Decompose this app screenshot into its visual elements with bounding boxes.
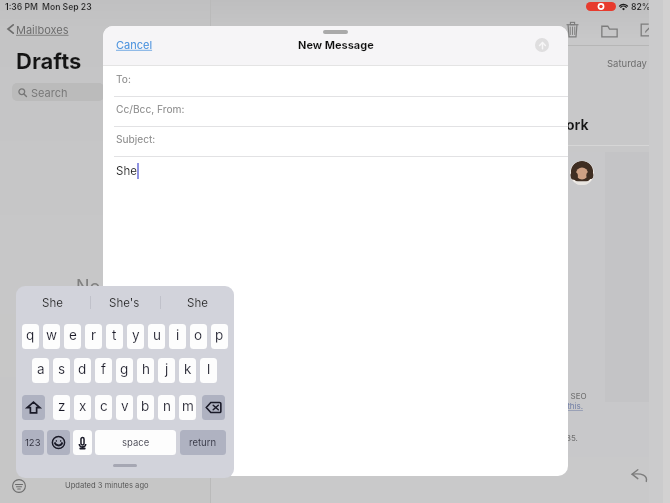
staticText: m (182, 398, 194, 414)
button[interactable]: s (53, 358, 70, 383)
button[interactable]: Subject: (103, 127, 568, 157)
button[interactable]: space (95, 430, 176, 455)
staticText: w (46, 327, 58, 343)
button[interactable]: Cancel (116, 38, 153, 51)
staticText: z (58, 398, 66, 414)
button[interactable]: p (211, 324, 228, 349)
staticText: Cc/Bcc, From: (116, 103, 185, 115)
button[interactable]: Sender avatar (570, 161, 594, 185)
staticText: 82% (631, 2, 651, 12)
staticText: 123 (25, 437, 41, 448)
staticText: t (112, 327, 117, 343)
staticText: x (79, 398, 87, 414)
staticText: Drafts (16, 48, 82, 75)
button[interactable]: Compose (640, 22, 655, 37)
button[interactable]: Filter (12, 479, 26, 493)
button[interactable]: k (179, 358, 196, 383)
staticText: p (215, 327, 224, 343)
button[interactable]: f (95, 358, 112, 383)
staticText: To: (116, 73, 131, 85)
staticText: space (122, 437, 150, 448)
button[interactable]: h (137, 358, 154, 383)
staticText: return (189, 437, 217, 448)
button[interactable]: She (16, 286, 88, 319)
button[interactable]: n (158, 395, 175, 420)
button[interactable]: j (158, 358, 175, 383)
staticText: q (26, 327, 35, 343)
staticText: c (100, 398, 108, 414)
staticText: a (37, 361, 45, 377)
button[interactable]: o (190, 324, 207, 349)
button[interactable]: v (116, 395, 133, 420)
button[interactable]: Emoji (47, 430, 70, 455)
staticText: Search (31, 86, 68, 99)
button[interactable]: u (148, 324, 165, 349)
button[interactable]: To: (103, 66, 568, 97)
button[interactable]: Shift (22, 395, 45, 420)
staticText: She (42, 296, 63, 310)
button[interactable]: Cc/Bcc, From: (103, 97, 568, 127)
staticText: She (116, 164, 137, 178)
button[interactable]: She (161, 286, 234, 319)
staticText: New Message (298, 38, 374, 51)
staticText: Cancel (116, 38, 153, 51)
staticText: Saturday (607, 58, 647, 69)
button[interactable]: Mailboxes (6, 22, 69, 36)
button[interactable]: t (106, 324, 123, 349)
button[interactable]: l (200, 358, 217, 383)
staticText: k (184, 361, 192, 377)
button[interactable]: m (179, 395, 196, 420)
staticText: She (187, 296, 208, 310)
button[interactable]: d (74, 358, 91, 383)
staticText: l (207, 361, 211, 377)
staticText: j (165, 361, 169, 377)
staticText: Mailboxes (16, 23, 69, 36)
staticText: e (69, 327, 77, 343)
button[interactable]: c (95, 395, 112, 420)
staticText: No (76, 276, 101, 298)
button[interactable]: r (85, 324, 102, 349)
staticText: y (132, 327, 140, 343)
staticText: d (78, 361, 87, 377)
staticText: , SEO (566, 391, 587, 401)
button[interactable]: e (64, 324, 81, 349)
staticText: n (163, 398, 171, 414)
button[interactable]: a (32, 358, 49, 383)
staticText: She's (109, 296, 140, 310)
staticText: f (101, 361, 106, 377)
button[interactable]: return (180, 430, 226, 455)
staticText: v (121, 398, 129, 414)
button[interactable]: Move to folder (601, 24, 618, 38)
button[interactable]: w (43, 324, 60, 349)
staticText: 85. (566, 433, 578, 443)
button[interactable]: Search (12, 83, 104, 101)
staticText: o (194, 327, 203, 343)
staticText: h (142, 361, 150, 377)
button[interactable]: b (137, 395, 154, 420)
button[interactable]: y (127, 324, 144, 349)
button[interactable]: She (103, 157, 568, 187)
button[interactable]: Backspace (202, 395, 225, 420)
button[interactable]: g (116, 358, 133, 383)
button[interactable]: Dictate (73, 430, 92, 455)
staticText: 1:36 PM (5, 2, 38, 12)
staticText: ork (566, 116, 589, 133)
button[interactable]: Reply (631, 468, 648, 482)
button[interactable]: x (74, 395, 91, 420)
staticText: b (141, 398, 150, 414)
staticText: g (120, 361, 129, 377)
staticText: i (176, 327, 180, 343)
staticText: d this. (560, 401, 583, 411)
staticText: s (58, 361, 66, 377)
button[interactable]: i (169, 324, 186, 349)
staticText: Updated 3 minutes ago (65, 481, 149, 490)
staticText: Subject: (116, 133, 156, 145)
staticText: Mon Sep 23 (42, 2, 92, 12)
button[interactable]: q (22, 324, 39, 349)
button[interactable]: Delete (566, 21, 579, 38)
button[interactable]: z (53, 395, 70, 420)
button[interactable]: She's (88, 286, 161, 319)
button[interactable]: Numbers (22, 430, 44, 455)
staticText: u (153, 327, 161, 343)
button[interactable]: Send (535, 38, 549, 52)
